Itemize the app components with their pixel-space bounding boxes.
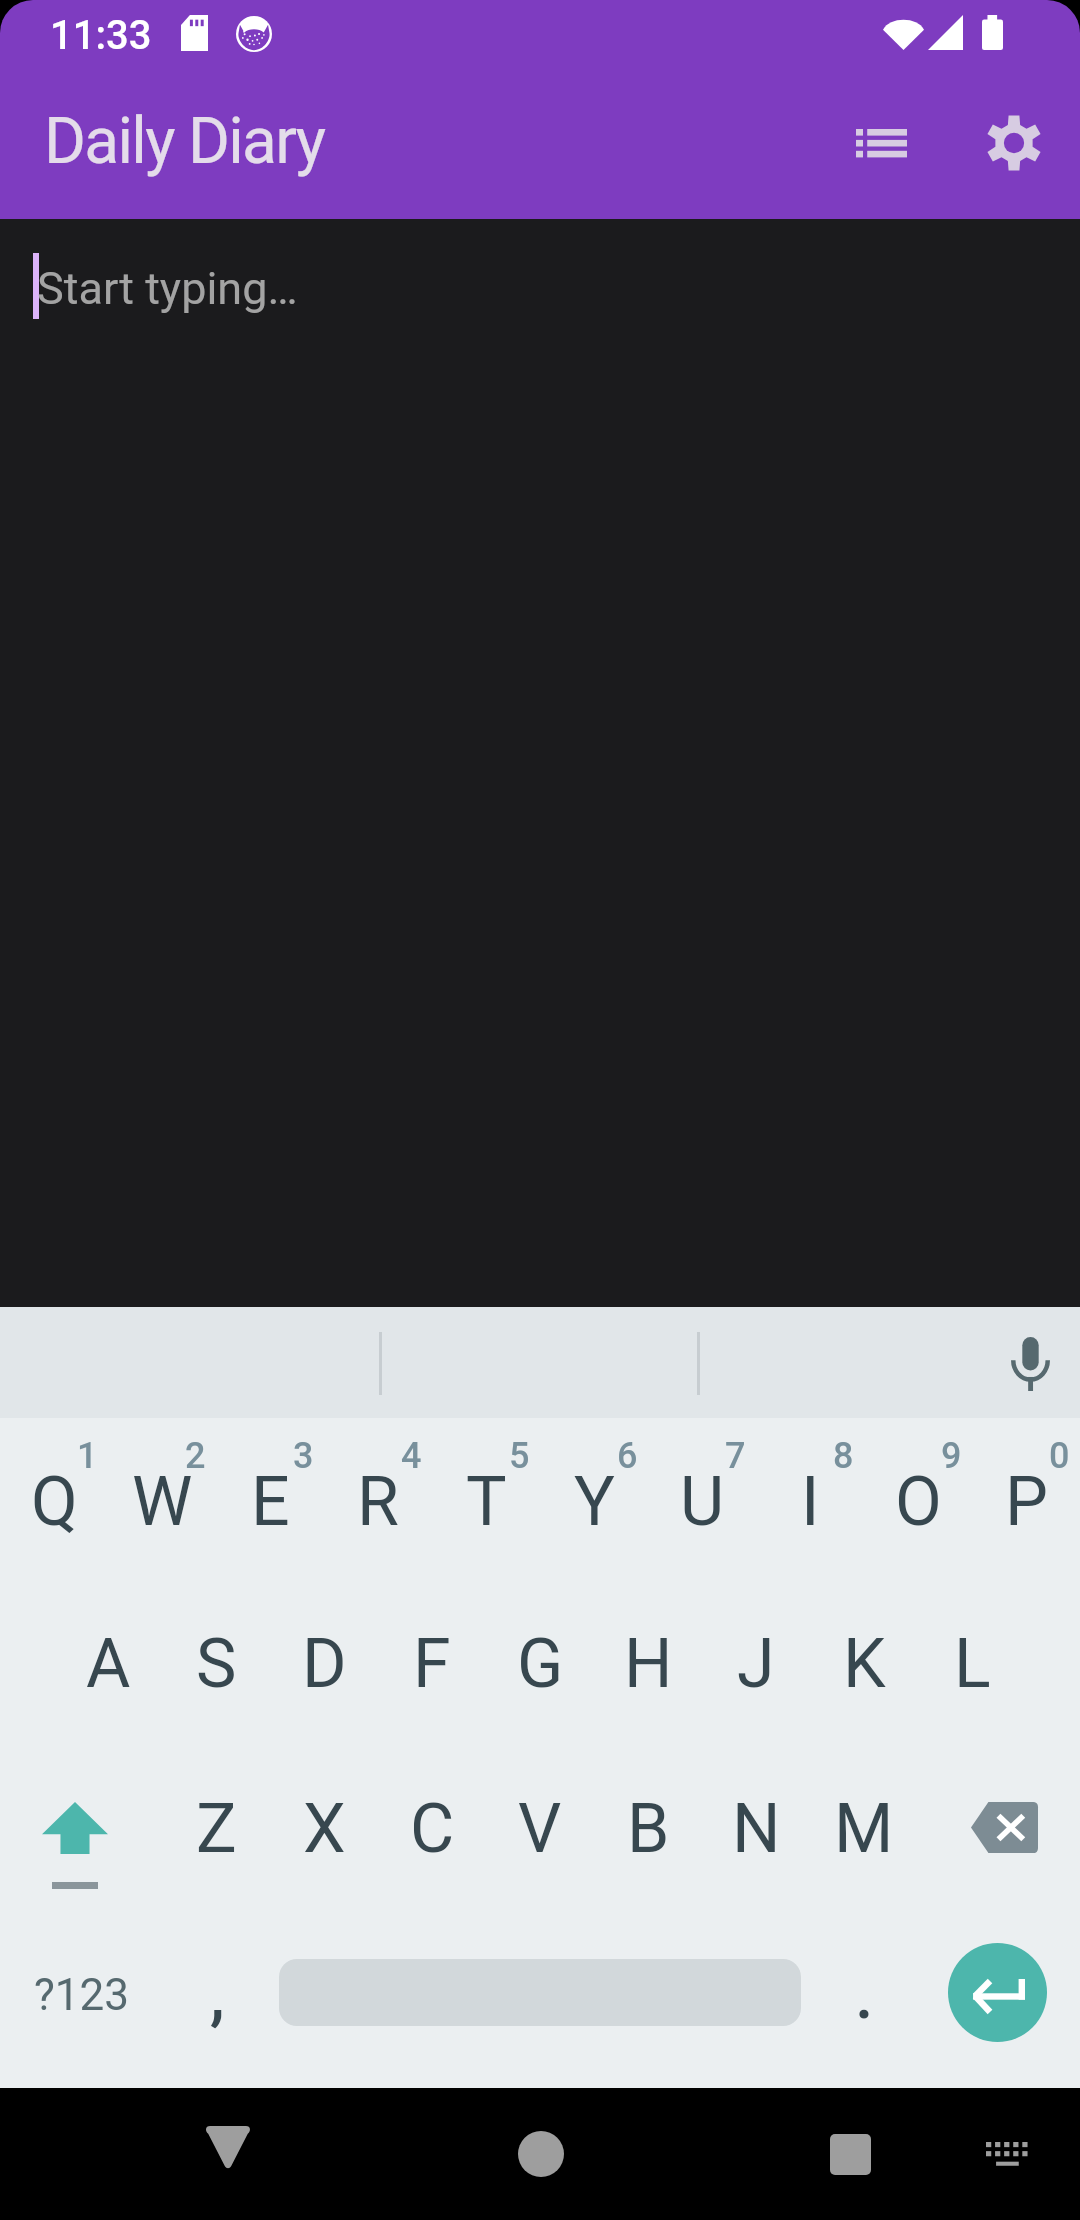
staticText: X bbox=[303, 1789, 346, 1869]
button[interactable]: A bbox=[54, 1588, 162, 1753]
button[interactable]: Entries list bbox=[830, 91, 934, 195]
staticText: 1 bbox=[77, 1435, 98, 1477]
button[interactable]: 0 bbox=[972, 1418, 1080, 1588]
button[interactable]: S bbox=[162, 1588, 270, 1753]
button[interactable]: V bbox=[486, 1753, 594, 1918]
staticText: Y bbox=[574, 1462, 615, 1542]
staticText: 9 bbox=[941, 1435, 962, 1477]
staticText: U bbox=[680, 1462, 725, 1542]
staticText: 6 bbox=[617, 1435, 638, 1477]
button[interactable]: 3 bbox=[216, 1418, 324, 1588]
staticText: C bbox=[410, 1789, 455, 1869]
button[interactable]: 2 bbox=[108, 1418, 216, 1588]
staticText: Daily Diary bbox=[44, 104, 325, 179]
staticText: S bbox=[196, 1624, 237, 1704]
button[interactable]: Hide keyboard bbox=[955, 2088, 1059, 2220]
staticText: M bbox=[834, 1789, 894, 1869]
staticText: 4 bbox=[401, 1435, 422, 1477]
button[interactable]: J bbox=[702, 1588, 810, 1753]
staticText: Z bbox=[196, 1789, 237, 1869]
button[interactable]: N bbox=[702, 1753, 810, 1918]
staticText: F bbox=[413, 1624, 451, 1704]
staticText: 8 bbox=[833, 1435, 854, 1477]
staticText: V bbox=[518, 1789, 562, 1869]
button[interactable]: Back bbox=[168, 2088, 288, 2220]
button[interactable]: 9 bbox=[864, 1418, 972, 1588]
staticText: T bbox=[466, 1462, 507, 1542]
button[interactable]: Backspace bbox=[918, 1753, 1080, 1918]
button[interactable]: B bbox=[594, 1753, 702, 1918]
button[interactable]: H bbox=[594, 1588, 702, 1753]
button[interactable]: Settings bbox=[962, 93, 1066, 197]
button[interactable]: 6 bbox=[540, 1418, 648, 1588]
staticText: G bbox=[517, 1624, 564, 1704]
staticText: N bbox=[732, 1789, 781, 1869]
staticText: 2 bbox=[185, 1435, 206, 1477]
staticText: K bbox=[843, 1624, 886, 1704]
staticText: D bbox=[302, 1624, 347, 1704]
staticText: ?123 bbox=[34, 1969, 129, 2021]
staticText: 7 bbox=[725, 1435, 746, 1477]
staticText: J bbox=[737, 1624, 775, 1704]
button[interactable]: M bbox=[810, 1753, 918, 1918]
staticText: 5 bbox=[509, 1435, 530, 1477]
staticText: R bbox=[357, 1462, 399, 1542]
button[interactable]: Home bbox=[480, 2088, 600, 2220]
staticText: B bbox=[627, 1789, 670, 1869]
staticText: Q bbox=[31, 1462, 78, 1542]
button[interactable]: . bbox=[801, 1918, 919, 2088]
button[interactable]: G bbox=[486, 1588, 594, 1753]
button[interactable]: 4 bbox=[324, 1418, 432, 1588]
button[interactable]: K bbox=[810, 1588, 918, 1753]
button[interactable]: Voice input bbox=[968, 1307, 1080, 1418]
staticText: I bbox=[801, 1462, 820, 1542]
button[interactable]: L bbox=[918, 1588, 1026, 1753]
button[interactable]: Enter bbox=[948, 1943, 1047, 2042]
staticText: Start typing… bbox=[37, 262, 298, 315]
button[interactable]: X bbox=[270, 1753, 378, 1918]
button[interactable]: 5 bbox=[432, 1418, 540, 1588]
staticText: O bbox=[895, 1462, 942, 1542]
button[interactable]: D bbox=[270, 1588, 378, 1753]
staticText: L bbox=[954, 1624, 991, 1704]
button[interactable]: Shift bbox=[0, 1753, 162, 1918]
button[interactable]: Z bbox=[162, 1753, 270, 1918]
staticText: 3 bbox=[293, 1435, 314, 1477]
staticText: W bbox=[132, 1462, 193, 1542]
staticText: E bbox=[251, 1462, 290, 1542]
staticText: 11:33 bbox=[50, 12, 152, 59]
button[interactable]: C bbox=[378, 1753, 486, 1918]
button[interactable]: 8 bbox=[756, 1418, 864, 1588]
staticText: . bbox=[855, 1957, 874, 2034]
staticText: A bbox=[86, 1624, 131, 1704]
staticText: H bbox=[624, 1624, 673, 1704]
button[interactable]: , bbox=[162, 1918, 280, 2088]
button[interactable]: ?123 bbox=[0, 1918, 162, 2088]
button[interactable]: 1 bbox=[0, 1418, 108, 1588]
staticText: P bbox=[1005, 1462, 1048, 1542]
button[interactable]: 7 bbox=[648, 1418, 756, 1588]
staticText: 0 bbox=[1049, 1435, 1070, 1477]
button[interactable]: F bbox=[378, 1588, 486, 1753]
staticText: , bbox=[210, 1957, 225, 2034]
button[interactable]: Recent apps bbox=[790, 2088, 910, 2220]
